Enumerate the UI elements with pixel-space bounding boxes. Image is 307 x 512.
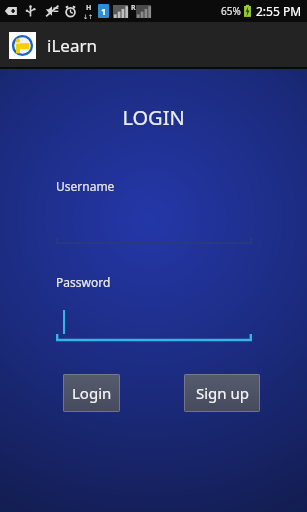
button[interactable]: Sign up: [184, 374, 260, 412]
staticText: 2:55 PM: [256, 3, 302, 19]
staticText: R: [131, 3, 136, 13]
staticText: H: [86, 3, 92, 13]
button[interactable]: [56, 290, 252, 334]
button[interactable]: Login: [63, 374, 120, 412]
staticText: LOGIN: [0, 104, 307, 131]
staticText: 1: [101, 5, 107, 17]
staticText: Username: [56, 178, 115, 194]
button[interactable]: [56, 194, 252, 238]
staticText: ↓↑: [83, 13, 94, 20]
staticText: Sign up: [196, 383, 249, 403]
staticText: Password: [56, 274, 111, 290]
staticText: Login: [72, 383, 112, 403]
staticText: 65%: [221, 4, 241, 18]
staticText: iLearn: [47, 34, 97, 57]
